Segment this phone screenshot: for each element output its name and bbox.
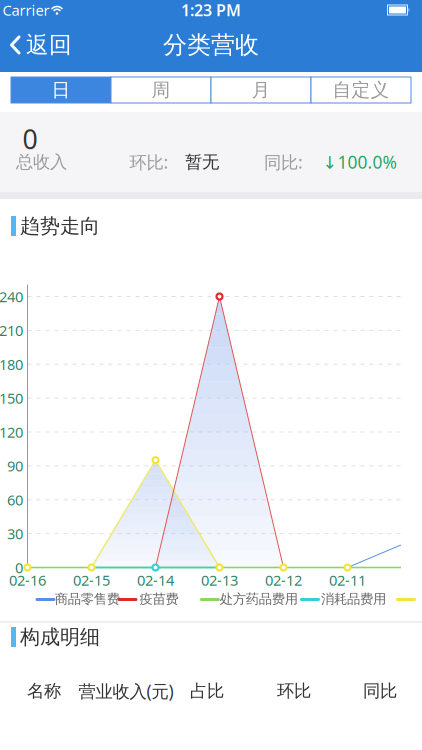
staticText: 90: [7, 456, 23, 476]
button[interactable]: 返回: [9, 28, 73, 62]
staticText: 02-15: [73, 570, 110, 590]
button[interactable]: 自定义: [311, 77, 411, 103]
button[interactable]: 疫苗费: [117, 591, 176, 607]
staticText: 02-13: [201, 570, 238, 590]
staticText: 分类营收: [163, 30, 259, 60]
staticText: 构成明细: [20, 625, 100, 649]
staticText: 返回: [26, 31, 72, 59]
staticText: 日: [51, 78, 70, 101]
button[interactable]: 更多图例: [396, 591, 416, 607]
staticText: 02-12: [265, 570, 302, 590]
staticText: 月: [251, 78, 270, 101]
button[interactable]: 消耗品费用: [300, 591, 382, 607]
staticText: 环比: [277, 680, 311, 702]
staticText: 240: [0, 287, 23, 306]
button[interactable]: 周: [111, 77, 211, 103]
staticText: Carrier: [2, 0, 49, 20]
staticText: 180: [0, 354, 23, 374]
staticText: 环比:: [129, 150, 168, 173]
staticText: 120: [0, 422, 23, 442]
staticText: 总收入: [16, 151, 67, 173]
staticText: 0: [22, 121, 37, 157]
staticText: 30: [7, 524, 23, 543]
button[interactable]: 处方药品费用: [200, 591, 293, 607]
button[interactable]: 月: [211, 77, 311, 103]
staticText: 营业收入(元): [78, 679, 173, 702]
button[interactable]: 商品零售费: [35, 591, 114, 607]
staticText: 趋势走向: [20, 214, 100, 238]
staticText: 占比: [190, 680, 224, 702]
staticText: 02-16: [9, 570, 46, 590]
staticText: 0: [15, 558, 23, 577]
staticText: 暂无: [185, 151, 219, 173]
staticText: 02-11: [329, 570, 366, 590]
button[interactable]: 日: [11, 77, 111, 103]
staticText: 处方药品费用: [220, 591, 298, 607]
staticText: 同比:: [264, 150, 303, 173]
staticText: 1:23 PM: [181, 0, 241, 21]
staticText: 消耗品费用: [321, 591, 386, 607]
staticText: 周: [151, 78, 170, 101]
staticText: 210: [0, 321, 23, 340]
staticText: ↓100.0%: [322, 150, 396, 173]
staticText: 02-14: [137, 570, 174, 590]
staticText: 疫苗费: [139, 591, 178, 607]
staticText: 自定义: [332, 78, 389, 101]
staticText: 名称: [27, 680, 61, 702]
staticText: 同比: [363, 680, 397, 702]
staticText: 商品零售费: [55, 591, 120, 607]
staticText: 150: [0, 388, 23, 408]
staticText: 60: [7, 490, 23, 509]
